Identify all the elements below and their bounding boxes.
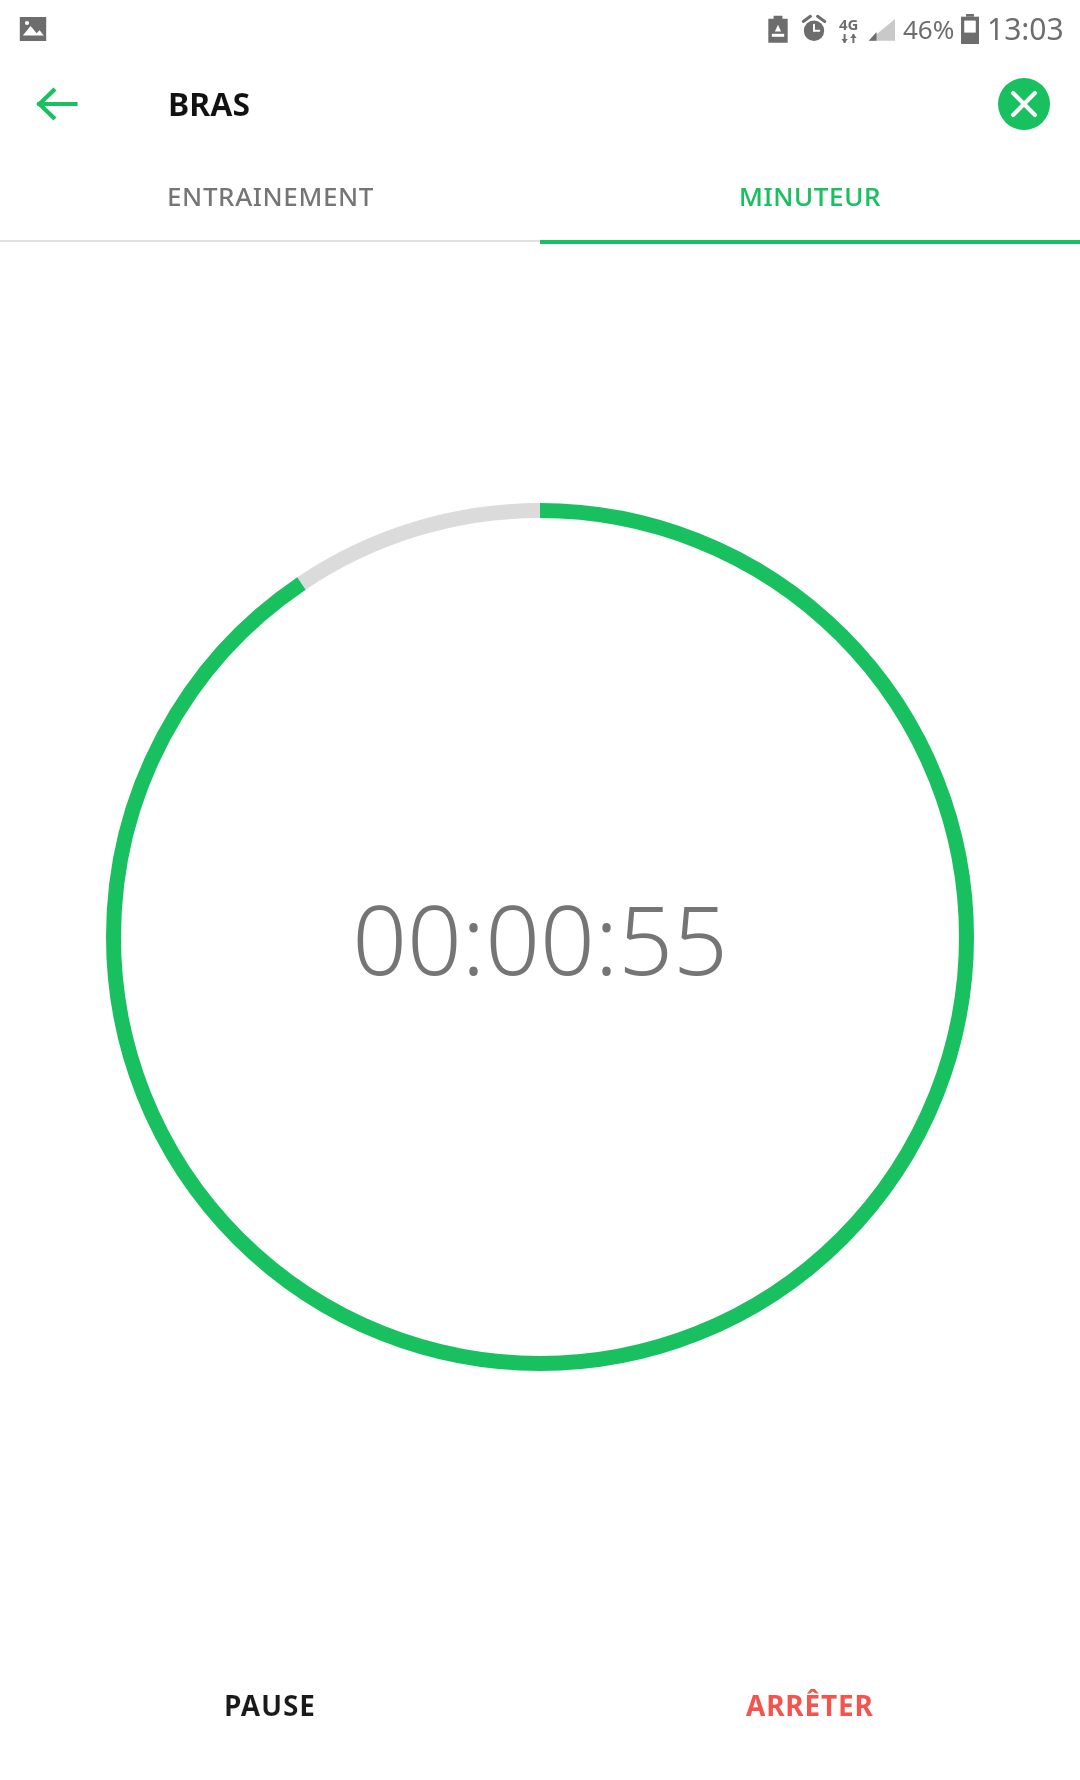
button[interactable]: Back bbox=[22, 69, 92, 139]
staticText: BRAS bbox=[168, 82, 251, 126]
button[interactable]: Close bbox=[996, 76, 1052, 132]
staticText: ENTRAINEMENT bbox=[167, 178, 374, 213]
staticText: 00:00:55 bbox=[352, 872, 728, 1003]
staticText: ARRÊTER bbox=[746, 1686, 874, 1724]
staticText: 46% bbox=[903, 11, 955, 46]
staticText: MINUTEUR bbox=[739, 178, 881, 213]
staticText: 4G bbox=[839, 14, 859, 34]
staticText: 13:03 bbox=[987, 8, 1064, 49]
button[interactable]: PAUSE bbox=[0, 1630, 540, 1780]
button[interactable]: ARRÊTER bbox=[540, 1630, 1080, 1780]
button[interactable]: ENTRAINEMENT bbox=[0, 150, 540, 240]
button[interactable]: MINUTEUR bbox=[540, 150, 1080, 240]
staticText: PAUSE bbox=[224, 1686, 316, 1724]
